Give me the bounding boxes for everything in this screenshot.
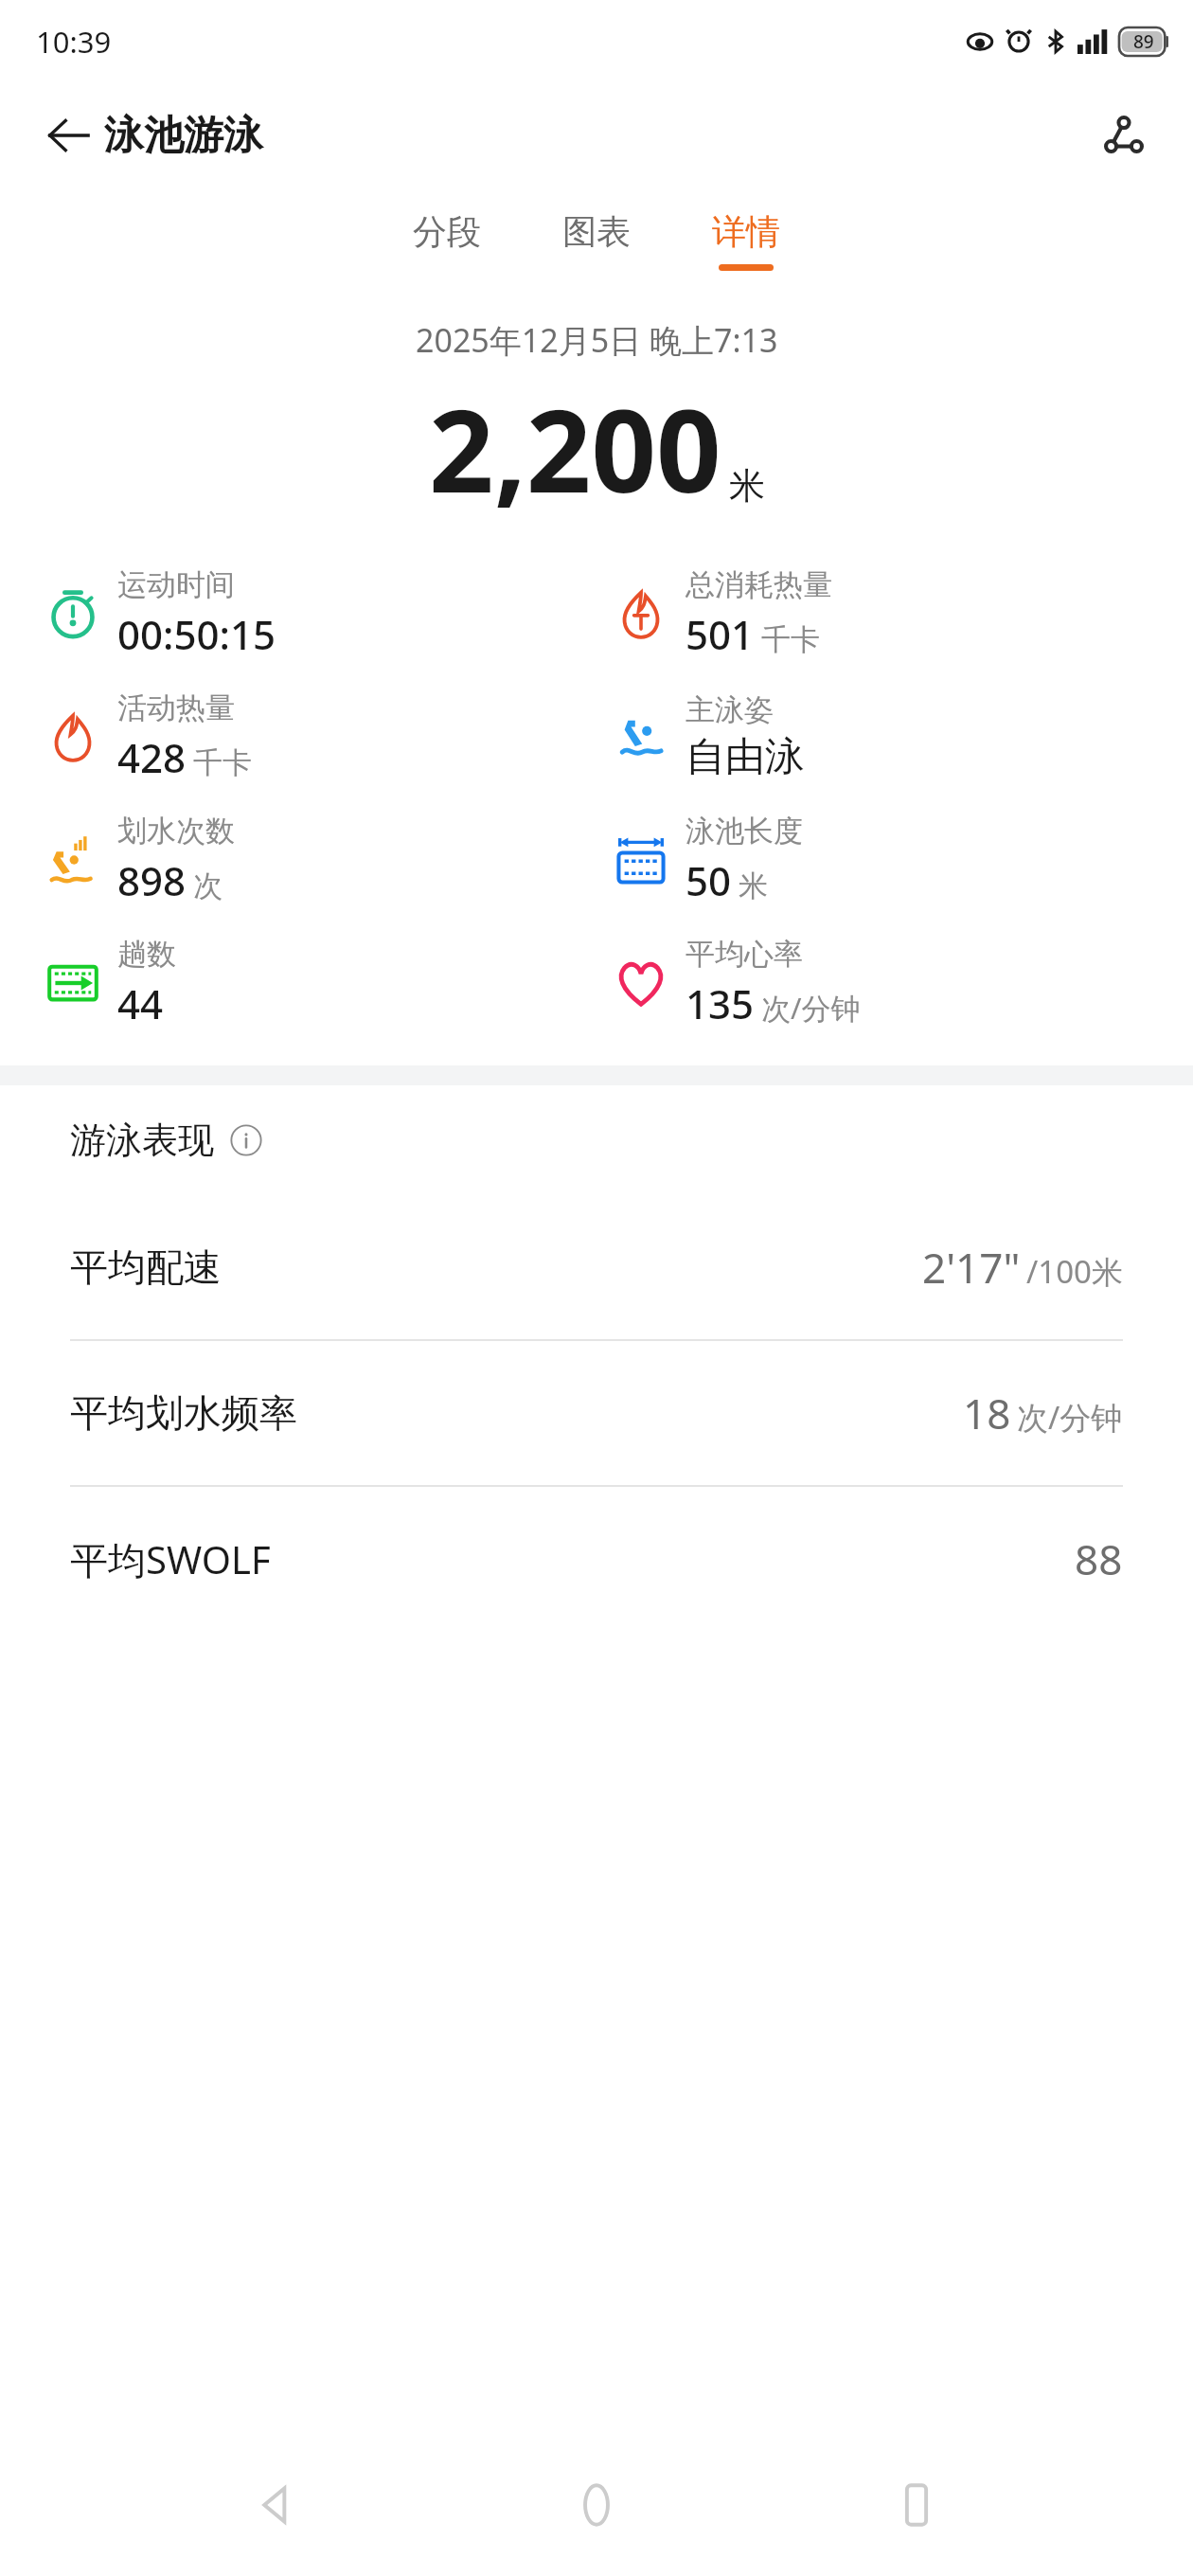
staticText: 89 (1133, 29, 1154, 54)
button[interactable]: 划水次数 (44, 798, 596, 921)
button[interactable]: 平均划水频率 (0, 1341, 1193, 1487)
staticText: 2'17" (922, 1239, 1021, 1296)
staticText: 428 (117, 730, 187, 784)
staticText: 分段 (413, 210, 481, 253)
staticText: 次/分钟 (1017, 1396, 1123, 1439)
staticText: /100米 (1026, 1250, 1123, 1293)
staticText: 2025年12月5日 晚上7:13 (416, 318, 778, 362)
staticText: 平均划水频率 (70, 1389, 297, 1437)
staticText: 活动热量 (117, 689, 235, 726)
button[interactable]: 平均配速 (0, 1195, 1193, 1341)
button[interactable]: Back (235, 2462, 320, 2548)
button[interactable]: 泳池长度 (612, 798, 1193, 921)
button[interactable]: 趟数 (44, 921, 596, 1045)
button[interactable]: 平均SWOLF (0, 1487, 1193, 1631)
button[interactable]: Recents (874, 2462, 959, 2548)
staticText: 游泳表现 (70, 1118, 214, 1163)
staticText: 平均配速 (70, 1243, 222, 1291)
button[interactable]: 分段 (401, 205, 492, 277)
button[interactable]: 总消耗热量 (612, 552, 1193, 675)
staticText: 泳池长度 (686, 813, 803, 850)
button[interactable]: 图表 (551, 205, 642, 277)
staticText: 千卡 (761, 621, 820, 658)
staticText: 2,200 (429, 371, 721, 526)
staticText: 次/分钟 (761, 988, 861, 1028)
staticText: 米 (729, 463, 765, 509)
staticText: 次 (193, 868, 223, 904)
staticText: 自由泳 (686, 732, 805, 782)
staticText: 平均SWOLF (70, 1533, 271, 1585)
staticText: 50 (686, 853, 732, 907)
button[interactable]: 运动时间 (44, 552, 596, 675)
staticText: 501 (686, 607, 755, 661)
button[interactable]: Share (1089, 100, 1159, 170)
button[interactable]: Back (38, 105, 98, 166)
staticText: 详情 (712, 210, 780, 253)
button[interactable]: 平均心率 (612, 921, 1193, 1045)
staticText: 主泳姿 (686, 691, 774, 728)
staticText: 划水次数 (117, 813, 235, 850)
button[interactable]: Info (227, 1121, 265, 1159)
button[interactable]: Home (554, 2462, 639, 2548)
button[interactable]: 活动热量 (44, 675, 596, 798)
staticText: 运动时间 (117, 566, 235, 603)
staticText: 总消耗热量 (686, 566, 832, 603)
staticText: 18 (963, 1385, 1011, 1441)
staticText: 10:39 (36, 22, 112, 62)
staticText: 趟数 (117, 936, 176, 973)
staticText: 平均心率 (686, 936, 803, 973)
staticText: 44 (117, 976, 164, 1030)
staticText: 千卡 (193, 744, 252, 781)
staticText: 图表 (562, 210, 631, 253)
staticText: 00:50:15 (117, 607, 276, 661)
staticText: 米 (739, 868, 768, 904)
staticText: 泳池游泳 (104, 111, 263, 161)
staticText: 898 (117, 853, 187, 907)
button[interactable]: 主泳姿 (612, 675, 1193, 798)
button[interactable]: 详情 (701, 205, 792, 277)
staticText: 135 (686, 976, 755, 1030)
staticText: 88 (1075, 1530, 1123, 1587)
